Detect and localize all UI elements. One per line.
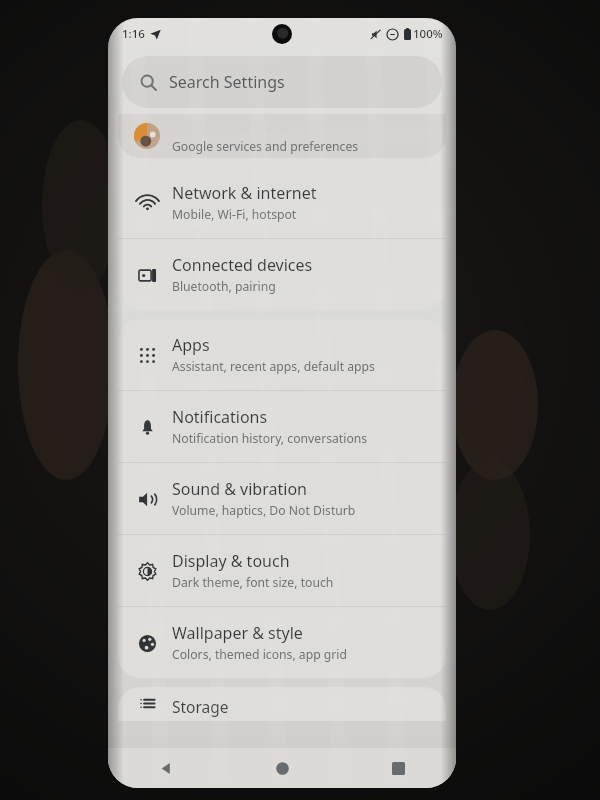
staticText: Network & internet	[172, 182, 317, 204]
staticText: Dark theme, font size, touch	[172, 574, 334, 591]
staticText: Notification history, conversations	[172, 430, 368, 447]
staticText: Notifications	[172, 406, 268, 428]
button[interactable]: Storage	[118, 687, 446, 721]
staticText: Bluetooth, pairing	[172, 278, 276, 295]
button[interactable]: Sound & vibration	[118, 463, 446, 534]
staticText: Colors, themed icons, app grid	[172, 646, 347, 663]
button[interactable]: Apps	[118, 319, 446, 390]
button[interactable]: Network & internet	[118, 167, 446, 238]
button[interactable]: Muzammil Qadri	[118, 114, 446, 158]
button[interactable]: Display & touch	[118, 535, 446, 606]
button[interactable]: Search Settings	[122, 56, 442, 108]
staticText: Sound & vibration	[172, 478, 307, 500]
button[interactable]: Back	[108, 748, 224, 788]
staticText: Display & touch	[172, 550, 290, 572]
button[interactable]: Notifications	[118, 391, 446, 462]
staticText: Apps	[172, 334, 210, 356]
staticText: Assistant, recent apps, default apps	[172, 358, 375, 375]
staticText: Google services and preferences	[172, 138, 359, 155]
staticText: Wallpaper & style	[172, 622, 303, 644]
staticText: 1:16	[122, 26, 145, 42]
button[interactable]: Connected devices	[118, 239, 446, 310]
staticText: Search Settings	[169, 71, 285, 93]
button[interactable]: Home	[224, 748, 340, 788]
staticText: Volume, haptics, Do Not Disturb	[172, 502, 356, 519]
button[interactable]: Wallpaper & style	[118, 607, 446, 678]
staticText: Connected devices	[172, 254, 313, 276]
staticText: Mobile, Wi-Fi, hotspot	[172, 206, 297, 223]
staticText: 100%	[413, 26, 443, 42]
button[interactable]: Recent apps	[340, 748, 456, 788]
staticText: Storage	[172, 696, 229, 717]
